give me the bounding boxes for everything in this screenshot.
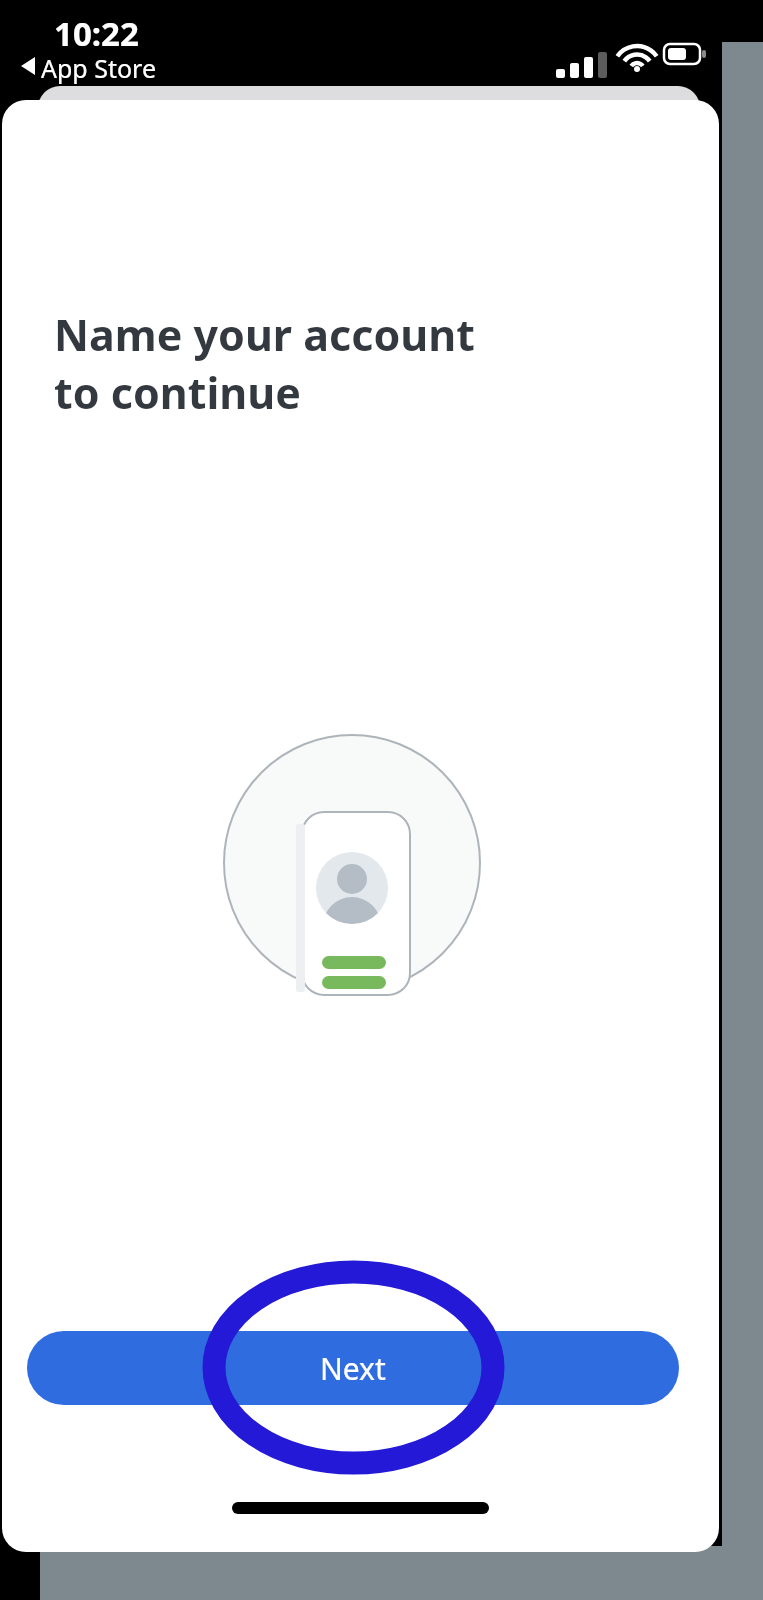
staticText: Next: [320, 1348, 386, 1389]
staticText: App Store: [41, 51, 157, 85]
staticText: 10:22: [54, 11, 139, 56]
button[interactable]: Back to App Store: [8, 46, 178, 82]
button[interactable]: Next: [27, 1331, 679, 1405]
staticText: Name your account to continue: [54, 305, 475, 421]
